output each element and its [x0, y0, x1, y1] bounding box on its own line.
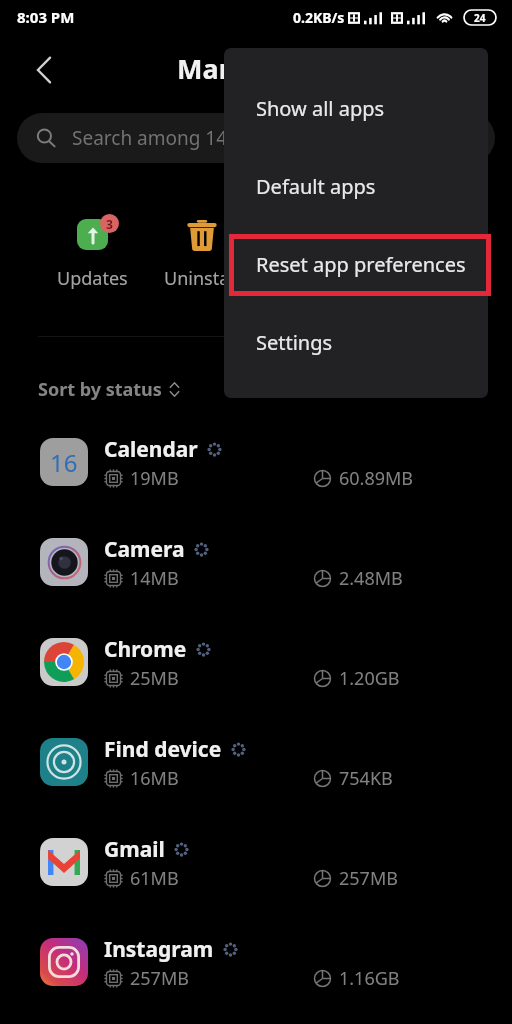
staticText: Uninstall [164, 266, 239, 291]
button[interactable]: Dual apps [365, 209, 474, 291]
button[interactable]: Sort by status [38, 377, 180, 402]
staticText: 3 [106, 216, 113, 232]
staticText: Find device [104, 735, 222, 764]
staticText: Chrome [104, 635, 187, 664]
button[interactable]: Search among 149 apps [17, 113, 495, 163]
staticText: 25MB [130, 666, 179, 691]
button[interactable]: 16 [0, 418, 512, 518]
staticText: 754KB [339, 766, 393, 791]
staticText: 14MB [130, 566, 179, 591]
staticText: Camera [104, 535, 185, 564]
staticText: 0.2KB/s [293, 8, 345, 27]
button[interactable]: Gmail [0, 818, 512, 918]
button[interactable]: Show all apps [224, 69, 488, 147]
staticText: 60.89MB [339, 466, 414, 491]
button[interactable]: Uninstall [147, 209, 256, 291]
staticText: 8:03 PM [17, 7, 75, 27]
staticText: Default apps [256, 173, 376, 200]
staticText: 1.16GB [339, 966, 400, 991]
staticText: Settings [256, 329, 333, 356]
staticText: Manage apps [177, 50, 357, 87]
staticText: Updates [57, 266, 128, 291]
button[interactable]: Back [24, 50, 64, 90]
staticText: Show all apps [256, 95, 385, 122]
staticText: Search among 149 apps [72, 125, 287, 151]
button[interactable]: Chrome [0, 618, 512, 718]
staticText: 2.48MB [339, 566, 403, 591]
staticText: 257MB [339, 866, 398, 891]
staticText: 1.20GB [339, 666, 400, 691]
staticText: Reset app preferences [256, 251, 466, 278]
button[interactable]: Reset app preferences [224, 225, 488, 303]
button[interactable]: 3 [38, 209, 147, 291]
staticText: Gmail [104, 835, 165, 864]
staticText: 24 [474, 11, 486, 25]
staticText: 16 [50, 446, 78, 479]
button[interactable]: Permissions [256, 209, 365, 291]
staticText: 61MB [130, 866, 179, 891]
button[interactable]: Camera [0, 518, 512, 618]
staticText: Dual apps [377, 266, 462, 291]
staticText: Instagram [104, 935, 214, 964]
button[interactable]: Settings [224, 303, 488, 381]
staticText: Sort by status [38, 377, 162, 402]
staticText: Calendar [104, 435, 198, 464]
button[interactable]: Instagram [0, 918, 512, 1018]
staticText: Permissions [259, 266, 362, 291]
staticText: 257MB [130, 966, 189, 991]
button[interactable]: Find device [0, 718, 512, 818]
staticText: 19MB [130, 466, 179, 491]
staticText: 16MB [130, 766, 179, 791]
button[interactable]: Default apps [224, 147, 488, 225]
